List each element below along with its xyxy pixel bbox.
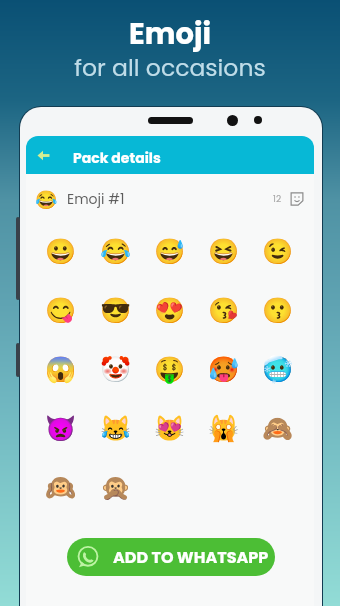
- button[interactable]: 🥵: [197, 340, 251, 399]
- staticText: 😂: [35, 189, 58, 210]
- button[interactable]: 😀: [33, 222, 88, 281]
- staticText: 😹: [100, 414, 132, 443]
- staticText: 🤑: [154, 355, 186, 384]
- button[interactable]: 🙈: [251, 399, 305, 458]
- button[interactable]: 👿: [33, 399, 88, 458]
- button[interactable]: 😎: [88, 281, 143, 340]
- staticText: Emoji #1: [67, 189, 125, 209]
- button[interactable]: 🤡: [88, 340, 143, 399]
- button[interactable]: 🤑: [143, 340, 197, 399]
- staticText: 😋: [45, 296, 77, 325]
- button[interactable]: 😍: [143, 281, 197, 340]
- staticText: 😘: [208, 296, 240, 325]
- button[interactable]: 😂: [88, 222, 143, 281]
- button[interactable]: 🥶: [251, 340, 305, 399]
- staticText: 🥶: [262, 355, 294, 384]
- button[interactable]: 😗: [251, 281, 305, 340]
- staticText: 🤡: [100, 355, 132, 384]
- button[interactable]: 😅: [143, 222, 197, 281]
- staticText: 😍: [154, 296, 186, 325]
- button[interactable]: 🙀: [197, 399, 251, 458]
- button[interactable]: 😋: [33, 281, 88, 340]
- staticText: 😎: [100, 296, 132, 325]
- button[interactable]: 😻: [143, 399, 197, 458]
- staticText: 😆: [208, 237, 240, 266]
- staticText: 12: [273, 193, 282, 206]
- staticText: 🙀: [208, 414, 240, 443]
- button[interactable]: 🙊: [88, 458, 143, 517]
- button[interactable]: 🙉: [33, 458, 88, 517]
- staticText: 😅: [154, 237, 186, 266]
- staticText: 👿: [45, 414, 77, 443]
- staticText: 😂: [100, 237, 132, 266]
- staticText: 😱: [45, 355, 77, 384]
- staticText: 🙉: [45, 473, 77, 502]
- button[interactable]: 😹: [88, 399, 143, 458]
- button[interactable]: 😉: [251, 222, 305, 281]
- staticText: ADD TO WHATSAPP: [113, 546, 269, 568]
- button[interactable]: ADD TO WHATSAPP: [67, 538, 275, 576]
- staticText: 🙊: [100, 473, 132, 502]
- button[interactable]: 😆: [197, 222, 251, 281]
- staticText: 😻: [154, 414, 186, 443]
- button[interactable]: 😂: [26, 182, 314, 216]
- staticText: for all occasions: [74, 51, 266, 84]
- staticText: 🙈: [262, 414, 294, 443]
- staticText: 😀: [45, 237, 77, 266]
- staticText: 😗: [262, 296, 294, 325]
- button[interactable]: 😘: [197, 281, 251, 340]
- button[interactable]: 😱: [33, 340, 88, 399]
- staticText: 🥵: [208, 355, 240, 384]
- staticText: Pack details: [73, 148, 161, 168]
- staticText: Emoji: [129, 14, 211, 55]
- button[interactable]: Back: [26, 136, 60, 174]
- staticText: 😉: [262, 237, 294, 266]
